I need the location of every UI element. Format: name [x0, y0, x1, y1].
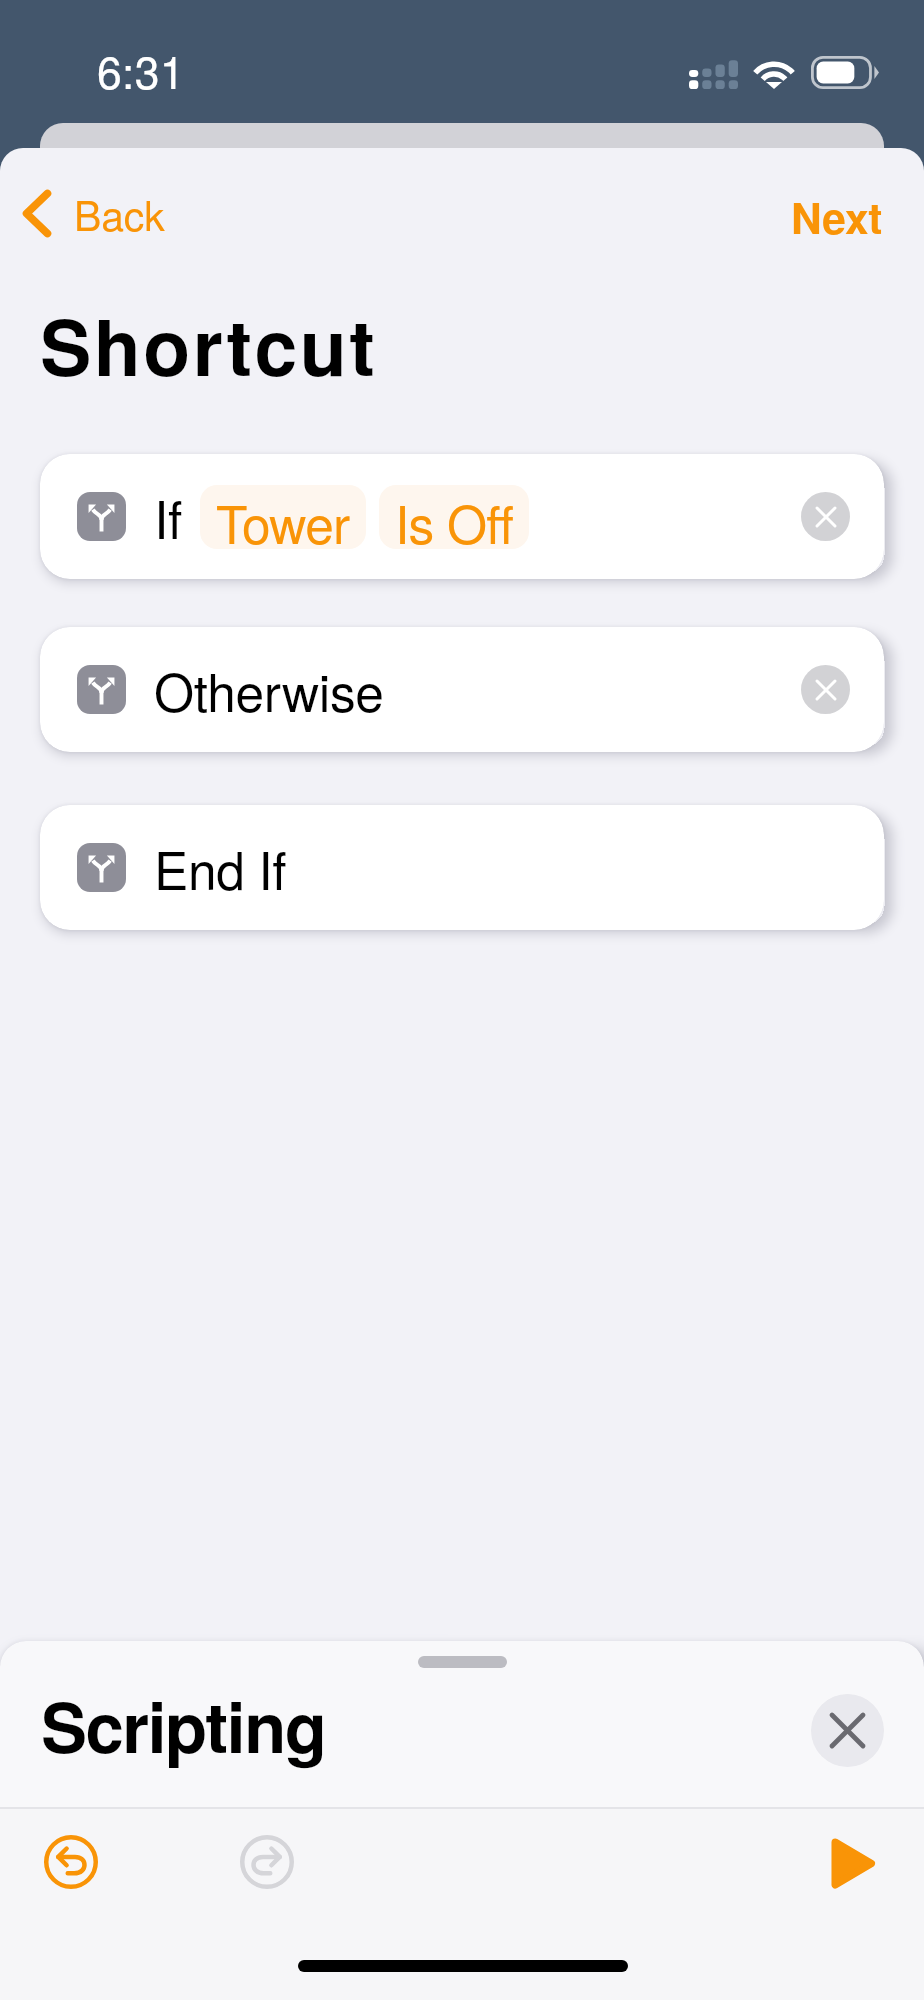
staticText: Otherwise: [154, 653, 384, 727]
button[interactable]: Undo: [43, 1834, 99, 1890]
staticText: End If: [154, 831, 287, 905]
button[interactable]: Next: [761, 174, 924, 259]
button[interactable]: Otherwise: [40, 627, 884, 752]
button[interactable]: Redo: [239, 1834, 295, 1890]
button[interactable]: End If: [40, 805, 884, 930]
staticText: If: [154, 480, 182, 554]
staticText: 6:31: [97, 38, 185, 102]
staticText: Back: [74, 184, 165, 243]
button[interactable]: Run: [824, 1831, 884, 1895]
button[interactable]: Close: [811, 1694, 884, 1767]
button[interactable]: Delete action: [801, 665, 850, 714]
staticText: Next: [791, 186, 883, 247]
button[interactable]: If: [40, 454, 884, 579]
staticText: Tower: [216, 485, 350, 549]
staticText: Is Off: [395, 485, 513, 549]
button[interactable]: Delete action: [801, 492, 850, 541]
staticText: Scripting: [41, 1675, 326, 1774]
button[interactable]: Back: [0, 178, 185, 249]
staticText: Shortcut: [40, 289, 378, 399]
